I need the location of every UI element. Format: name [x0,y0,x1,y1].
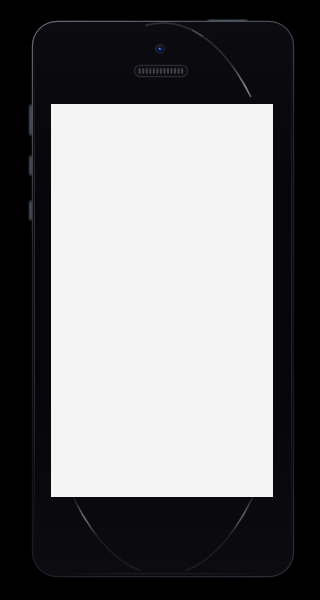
button[interactable]: Phone device mockup with blank screen [0,0,320,600]
